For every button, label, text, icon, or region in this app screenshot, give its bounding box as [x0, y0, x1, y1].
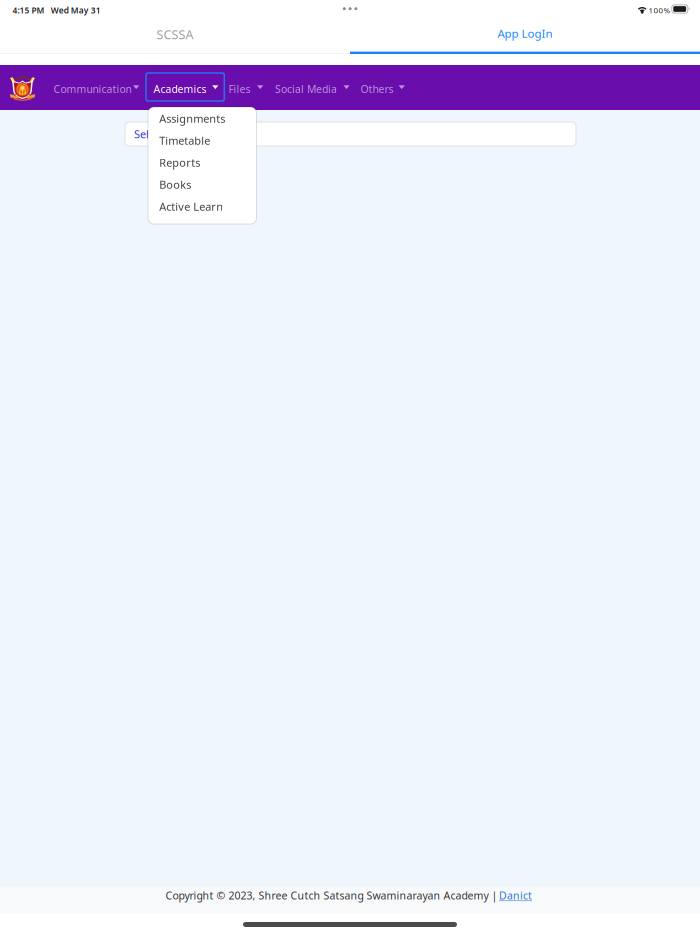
staticText: Danict [499, 888, 532, 902]
staticText: Wed May 31 [51, 5, 101, 16]
button[interactable]: App LogIn [350, 18, 700, 54]
button[interactable]: Active Learn [148, 202, 256, 224]
staticText: Reports [159, 155, 200, 170]
staticText: Select [134, 127, 164, 141]
staticText: SCSSA [156, 26, 193, 43]
button[interactable]: Timetable [148, 136, 256, 158]
staticText: Files [229, 82, 251, 96]
button[interactable]: Books [148, 180, 256, 202]
staticText: Books [159, 177, 191, 192]
button[interactable]: Others [361, 73, 406, 101]
staticText: Social Media [275, 82, 337, 96]
button[interactable]: Academics [146, 73, 224, 101]
button[interactable]: Home [9, 74, 36, 101]
staticText: App LogIn [497, 25, 552, 41]
button[interactable]: Communication [53, 73, 140, 101]
staticText: Copyright © 2023, Shree Cutch Satsang Sw… [165, 888, 500, 902]
staticText: 100% [649, 5, 671, 16]
button[interactable]: Select [125, 122, 576, 146]
button[interactable]: SCSSA [0, 18, 350, 54]
button[interactable]: Danict [499, 888, 532, 902]
staticText: 4:15 PM [12, 5, 44, 16]
staticText: Communication [53, 82, 131, 96]
staticText: Active Learn [159, 199, 223, 214]
staticText: Others [361, 82, 394, 96]
staticText: Timetable [159, 133, 210, 148]
staticText: Assignments [159, 111, 225, 126]
button[interactable]: Files [229, 73, 264, 101]
button[interactable]: Assignments [148, 114, 256, 136]
staticText: Academics [153, 82, 206, 96]
button[interactable]: Social Media [275, 73, 350, 101]
button[interactable]: Reports [148, 158, 256, 180]
